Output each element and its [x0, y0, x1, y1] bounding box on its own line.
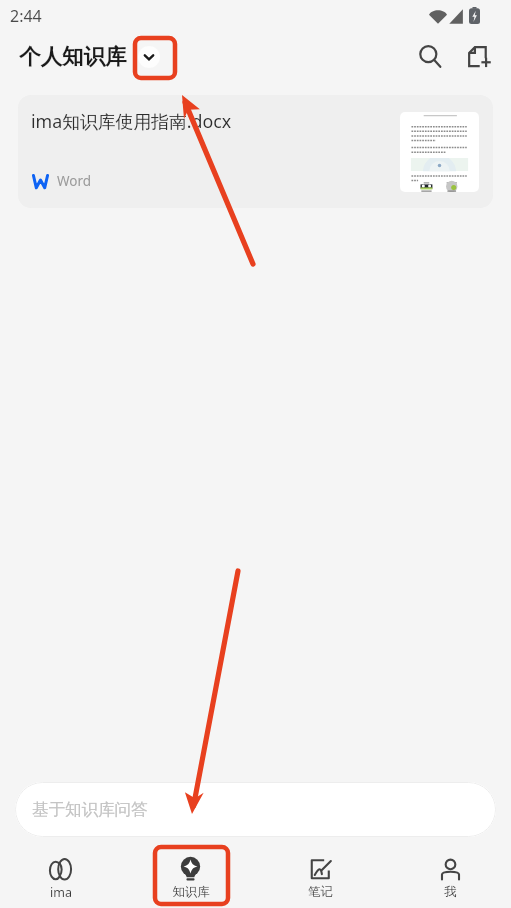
staticText: 知识库: [172, 884, 210, 900]
button[interactable]: ima: [12, 848, 109, 905]
button[interactable]: ima知识库使用指南.docx: [18, 95, 493, 208]
staticText: ima知识库使用指南.docx: [31, 109, 232, 133]
button[interactable]: 我: [402, 848, 499, 905]
staticText: Word: [57, 172, 92, 190]
button[interactable]: 基于知识库问答: [15, 782, 496, 837]
staticText: 我: [444, 884, 457, 900]
staticText: 笔记: [308, 884, 333, 900]
button[interactable]: New document: [457, 35, 501, 79]
staticText: 2:44: [10, 5, 42, 27]
button[interactable]: 笔记: [272, 848, 369, 905]
button[interactable]: Switch knowledge base: [138, 46, 160, 68]
staticText: 个人知识库: [19, 43, 127, 70]
staticText: ima: [50, 884, 72, 901]
button[interactable]: 知识库: [142, 848, 239, 905]
button[interactable]: Search: [408, 35, 452, 79]
staticText: 基于知识库问答: [32, 799, 148, 820]
